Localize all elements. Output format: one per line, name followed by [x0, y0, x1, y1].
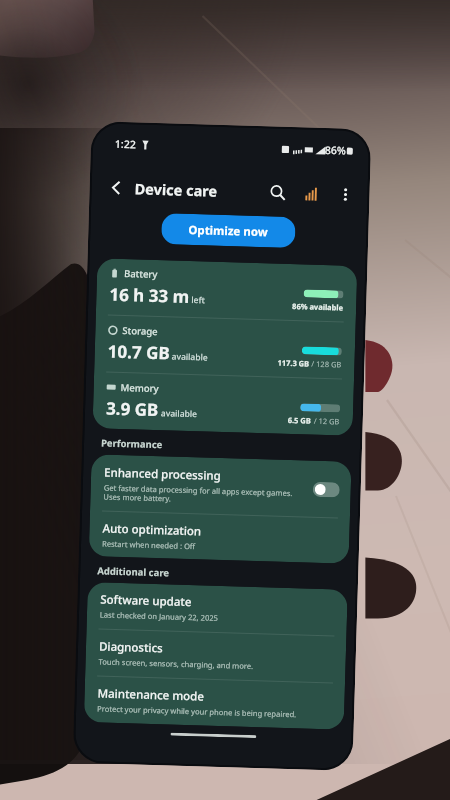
- staticText: Diagnostics: [99, 638, 163, 656]
- staticText: 117.3 GB: [277, 358, 310, 368]
- staticText: Enhanced processing: [104, 464, 221, 484]
- button[interactable]: Optimize now: [161, 213, 296, 248]
- button[interactable]: Storage: [94, 315, 356, 379]
- staticText: / 128 GB: [309, 359, 342, 369]
- staticText: Restart when needed : Off: [102, 538, 196, 551]
- button[interactable]: Auto optimization: [89, 511, 350, 564]
- button[interactable]: Enhanced processing toggle: [312, 482, 340, 497]
- staticText: 10.7 GB: [107, 340, 170, 364]
- staticText: / 12 GB: [312, 416, 340, 426]
- staticText: Storage: [122, 324, 159, 338]
- button[interactable]: Software update: [86, 582, 348, 636]
- button[interactable]: More options: [329, 178, 362, 211]
- staticText: Optimize now: [188, 222, 269, 240]
- staticText: Memory: [120, 381, 160, 395]
- staticText: Software update: [100, 591, 192, 610]
- staticText: 6.5 GB: [288, 415, 312, 426]
- staticText: Get faster data processing for all apps …: [103, 482, 293, 508]
- staticText: 16 h 33 m: [109, 283, 190, 308]
- staticText: Last checked on January 22, 2025: [100, 609, 219, 623]
- button[interactable]: Enhanced processing: [90, 454, 351, 518]
- button[interactable]: Battery: [96, 258, 357, 322]
- button[interactable]: Maintenance mode: [84, 676, 345, 730]
- button[interactable]: Search: [261, 176, 294, 209]
- staticText: 86% available: [292, 301, 343, 312]
- staticText: 86%: [325, 143, 346, 157]
- staticText: available: [161, 407, 198, 420]
- button[interactable]: Memory: [92, 372, 354, 436]
- button[interactable]: Diagnostics: [85, 629, 346, 683]
- staticText: Performance: [101, 436, 163, 451]
- staticText: Battery: [124, 267, 158, 281]
- button[interactable]: Navigate up: [101, 172, 132, 203]
- staticText: 1:22: [115, 137, 136, 151]
- button[interactable]: Usage statistics: [295, 177, 328, 210]
- staticText: Touch screen, sensors, charging, and mor…: [98, 656, 254, 671]
- staticText: left: [191, 294, 205, 306]
- staticText: 3.9 GB: [106, 396, 159, 421]
- staticText: Device care: [134, 178, 218, 201]
- staticText: Maintenance mode: [97, 685, 205, 705]
- staticText: Auto optimization: [102, 520, 202, 539]
- staticText: Protect your privacy while your phone is…: [97, 703, 297, 719]
- staticText: Additional care: [97, 564, 169, 579]
- staticText: available: [171, 350, 209, 364]
